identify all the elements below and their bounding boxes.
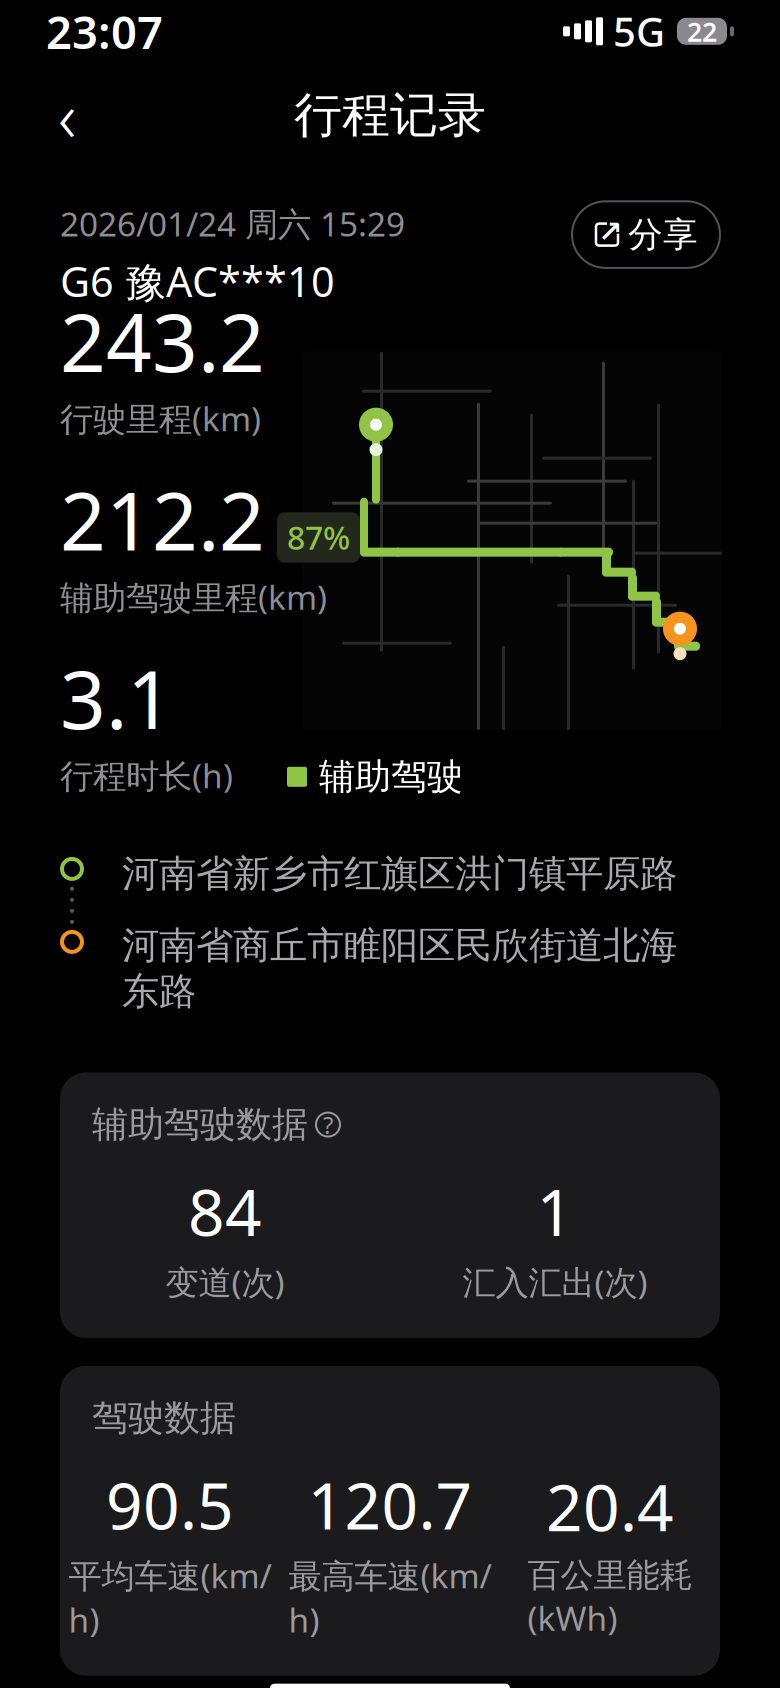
staticText: 1	[536, 1169, 573, 1254]
staticText: 22	[687, 14, 717, 49]
staticText: 河南省新乡市红旗区洪门镇平原路	[122, 851, 677, 897]
button[interactable]: ↗	[572, 201, 720, 268]
button[interactable]: 返回	[32, 80, 102, 150]
staticText: 汇入汇出(次)	[462, 1260, 647, 1304]
staticText: 平均车速(km/h)	[68, 1553, 271, 1642]
staticText: 行程时长(h)	[60, 753, 233, 797]
staticText: G6 豫AC***10	[60, 254, 335, 309]
staticText: ‹	[58, 69, 76, 161]
staticText: 212.2	[60, 466, 265, 573]
staticText: 最高车速(km/h)	[288, 1553, 491, 1642]
staticText: 2026/01/24 周六 15:29	[60, 201, 405, 246]
staticText: 变道(次)	[165, 1260, 284, 1304]
staticText: 120.7	[307, 1462, 472, 1547]
staticText: 百公里能耗(kWh)	[527, 1555, 692, 1640]
staticText: 辅助驾驶里程(km)	[60, 575, 327, 619]
staticText: 84	[188, 1169, 262, 1254]
staticText: ↗	[598, 215, 623, 248]
staticText: 行驶里程(km)	[60, 396, 261, 440]
staticText: 驾驶数据	[92, 1396, 236, 1440]
staticText: 87%	[287, 516, 350, 559]
staticText: 辅助驾驶	[319, 755, 463, 799]
staticText: 3.1	[60, 645, 173, 751]
staticText: 20.4	[546, 1464, 674, 1549]
staticText: 90.5	[106, 1462, 234, 1547]
staticText: ?	[323, 1109, 333, 1140]
staticText: 行程记录	[294, 86, 486, 145]
staticText: 分享	[628, 213, 698, 256]
button[interactable]: 辅助驾驶数据说明	[316, 1109, 340, 1140]
staticText: 辅助驾驶数据	[92, 1102, 308, 1147]
staticText: 河南省商丘市睢阳区民欣街道北海东路	[122, 923, 677, 1014]
staticText: 243.2	[60, 288, 265, 394]
staticText: 23:07	[46, 1, 163, 61]
staticText: 5G	[613, 5, 665, 58]
